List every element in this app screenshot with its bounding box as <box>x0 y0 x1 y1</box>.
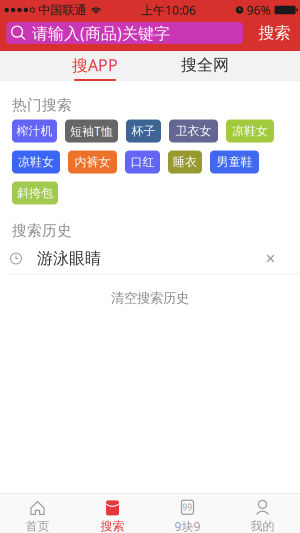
button[interactable]: 搜全网 <box>150 51 260 81</box>
staticText: 斜挎包 <box>17 186 53 200</box>
staticText: 清空搜索历史 <box>111 290 189 306</box>
button[interactable]: 凉鞋女 <box>226 119 274 142</box>
staticText: 卫衣女 <box>175 124 211 138</box>
button[interactable]: 清空搜索历史 <box>0 284 300 311</box>
button[interactable]: 卫衣女 <box>169 119 218 142</box>
staticText: 搜索历史 <box>12 221 72 239</box>
staticText: 9块9 <box>174 518 200 533</box>
staticText: 杯子 <box>131 124 155 138</box>
staticText: 游泳眼睛 <box>37 249 101 268</box>
button[interactable]: 搜索 <box>249 22 300 44</box>
button[interactable]: 杯子 <box>126 119 161 142</box>
staticText: 短袖T恤 <box>70 123 113 139</box>
button[interactable]: 首页 <box>0 493 75 533</box>
staticText: 搜索 <box>258 23 290 43</box>
staticText: 睡衣 <box>173 155 197 169</box>
button[interactable]: 我的 <box>225 493 300 533</box>
staticText: 99 <box>182 502 192 513</box>
staticText: 搜索 <box>100 519 124 533</box>
staticText: 热门搜索 <box>12 96 72 114</box>
button[interactable]: 搜索 <box>75 493 150 533</box>
staticText: 内裤女 <box>74 155 110 169</box>
button[interactable]: 搜APP <box>40 51 150 81</box>
staticText: 榨汁机 <box>16 124 52 138</box>
staticText: 请输入(商品)关键字 <box>32 22 170 44</box>
staticText: 96% <box>247 2 271 18</box>
staticText: 上午10:06 <box>141 2 196 18</box>
staticText: 口红 <box>130 155 154 169</box>
button[interactable]: 榨汁机 <box>12 119 57 142</box>
button[interactable]: 男童鞋 <box>210 150 259 173</box>
staticText: 搜全网 <box>181 55 229 75</box>
button[interactable]: 内裤女 <box>68 150 117 173</box>
staticText: 搜APP <box>72 54 118 76</box>
staticText: 男童鞋 <box>216 155 252 169</box>
button[interactable]: 短袖T恤 <box>65 119 118 142</box>
button[interactable]: 斜挎包 <box>12 181 58 204</box>
button[interactable]: 游泳眼睛 <box>0 243 300 273</box>
button[interactable]: 口红 <box>125 150 160 173</box>
button[interactable]: 凉鞋女 <box>12 150 60 173</box>
button[interactable]: 99 <box>150 493 225 533</box>
staticText: 凉鞋女 <box>18 155 54 169</box>
staticText: 首页 <box>25 519 49 533</box>
button[interactable]: 睡衣 <box>168 150 202 173</box>
staticText: 凉鞋女 <box>232 124 268 138</box>
staticText: 中国联通 <box>38 3 86 17</box>
staticText: 我的 <box>250 519 274 533</box>
